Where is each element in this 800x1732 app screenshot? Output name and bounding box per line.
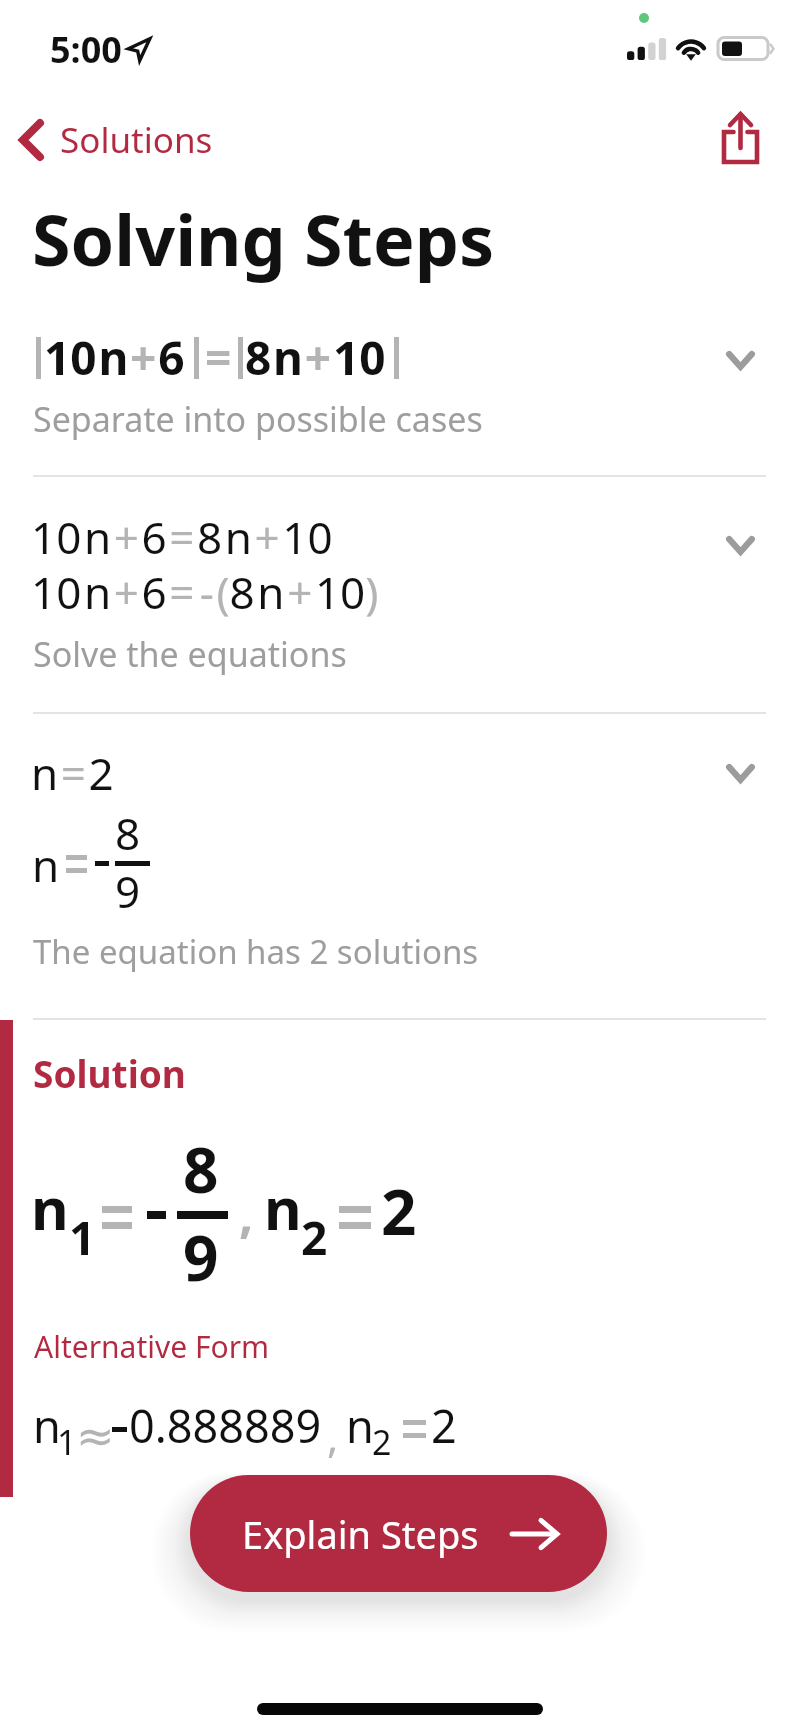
staticText: 8 n + 10 — [245, 326, 386, 389]
staticText: Separate into possible cases — [33, 396, 483, 442]
button[interactable]: 10 n + 6 = 8 n + 10 — [0, 500, 800, 700]
button[interactable]: Expand step — [702, 735, 778, 811]
staticText: 10 n + 6 = 8 n + 10 — [31, 507, 333, 567]
staticText: The equation has 2 solutions — [33, 929, 479, 974]
staticText: 8 — [183, 1127, 219, 1211]
staticText: 2 — [431, 1395, 457, 1456]
staticText: n — [32, 835, 60, 895]
staticText: 1 — [57, 1419, 77, 1465]
staticText: 9 — [115, 861, 141, 921]
staticText: 5:00 — [50, 25, 122, 74]
button[interactable]: Explain Steps — [190, 1475, 607, 1592]
button[interactable]: Share — [702, 102, 778, 178]
button[interactable]: Expand step — [702, 507, 778, 583]
staticText: 1 — [69, 1206, 96, 1269]
staticText: n = 2 — [31, 743, 114, 803]
staticText: 9 — [183, 1215, 219, 1299]
staticText: 2 — [381, 1169, 417, 1253]
staticText: 2 — [372, 1419, 392, 1465]
button[interactable]: Solutions — [0, 100, 231, 180]
staticText: n — [346, 1395, 374, 1456]
button[interactable]: n = 2 — [0, 730, 800, 1010]
staticText: Solution — [33, 1048, 186, 1098]
staticText: Solve the equations — [33, 631, 347, 677]
button[interactable]: 10 n + 6 — [0, 310, 800, 460]
button[interactable]: Expand step — [702, 322, 778, 398]
staticText: n — [264, 1168, 302, 1247]
staticText: Alternative Form — [34, 1326, 270, 1367]
staticText: ≈ — [76, 1409, 115, 1463]
staticText: Solutions — [60, 116, 213, 164]
staticText: 10 n + 6 — [44, 326, 185, 389]
staticText: 2 — [301, 1206, 328, 1269]
staticText: n — [33, 1395, 61, 1456]
staticText: , — [327, 1408, 339, 1465]
staticText: 8 — [115, 803, 141, 863]
staticText: 0.888889 — [129, 1395, 322, 1456]
staticText: , — [239, 1180, 254, 1248]
staticText: n — [31, 1168, 69, 1247]
staticText: 10 n + 6 = - (8 n + 10) — [31, 562, 379, 622]
staticText: = — [205, 326, 232, 389]
staticText: Solving Steps — [32, 191, 495, 286]
staticText: Explain Steps — [242, 1508, 479, 1560]
